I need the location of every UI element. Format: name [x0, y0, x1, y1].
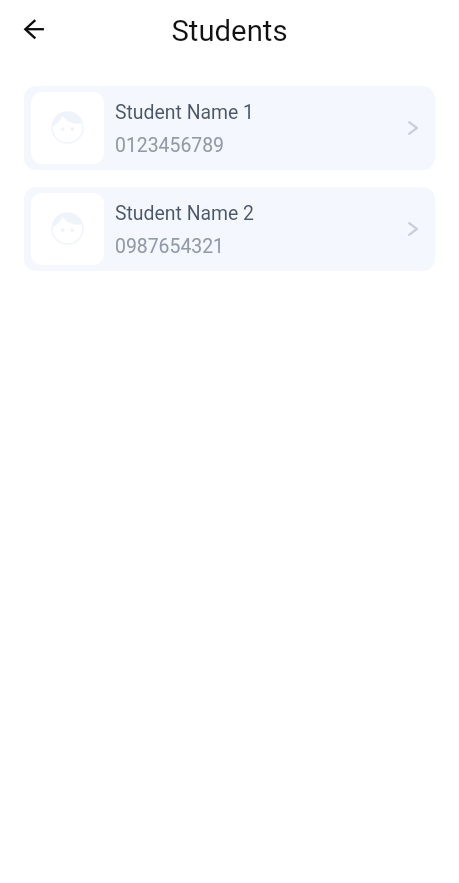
- staticText: Students: [171, 14, 288, 48]
- staticText: Student Name 1: [115, 101, 255, 124]
- staticText: Student Name 2: [115, 202, 255, 225]
- button[interactable]: Student Name 2: [24, 187, 435, 271]
- button[interactable]: Back: [6, 5, 54, 53]
- staticText: 0123456789: [115, 134, 224, 157]
- button[interactable]: Student Name 1: [24, 86, 435, 170]
- staticText: 0987654321: [115, 235, 224, 258]
